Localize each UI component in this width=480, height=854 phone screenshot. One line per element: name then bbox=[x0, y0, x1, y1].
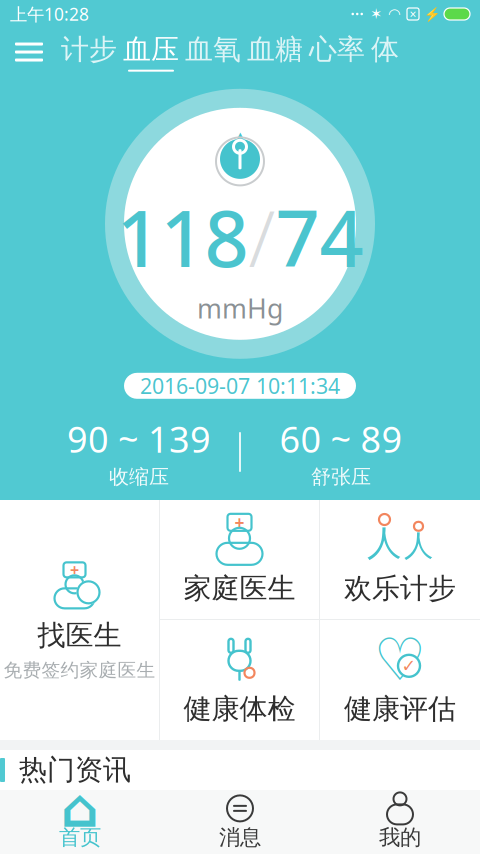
button[interactable]: 我的 bbox=[320, 790, 480, 854]
staticText: 人 bbox=[367, 522, 402, 565]
button[interactable]: + bbox=[160, 500, 319, 619]
button[interactable]: 血压 bbox=[120, 28, 182, 76]
staticText: 健康评估 bbox=[344, 692, 456, 726]
staticText: 上午10:28 bbox=[10, 2, 89, 25]
staticText: ◠ bbox=[388, 6, 401, 22]
staticText: 计步 bbox=[61, 32, 117, 67]
button[interactable]: 消息 bbox=[160, 790, 320, 854]
staticText: 体 bbox=[371, 32, 399, 67]
staticText: ✶ bbox=[370, 6, 382, 22]
button[interactable]: 菜单 bbox=[0, 28, 58, 76]
staticText: 欢乐计步 bbox=[344, 571, 456, 606]
staticText: ▲ bbox=[229, 120, 250, 150]
staticText: 心率 bbox=[309, 32, 365, 67]
staticText: 90 ~ 139 bbox=[67, 415, 211, 463]
staticText: ⌂ bbox=[61, 778, 99, 839]
staticText: 血氧 bbox=[185, 32, 241, 67]
staticText: 健康体检 bbox=[183, 692, 295, 726]
staticText: 收缩压 bbox=[109, 465, 169, 489]
staticText: 118 bbox=[116, 186, 248, 288]
staticText: + bbox=[234, 511, 244, 534]
staticText: × bbox=[409, 6, 416, 22]
staticText: 免费签约家庭医生 bbox=[3, 659, 155, 682]
button[interactable]: 2016-09-07 10:11:34 bbox=[124, 373, 356, 399]
staticText: 人 bbox=[404, 528, 433, 564]
staticText: 家庭医生 bbox=[183, 571, 295, 606]
staticText: 首页 bbox=[59, 824, 101, 851]
staticText: ▲ bbox=[232, 127, 248, 151]
staticText: 血压 bbox=[123, 32, 179, 67]
staticText: 血糖 bbox=[247, 32, 303, 67]
staticText: 舒张压 bbox=[311, 465, 371, 489]
button[interactable]: + bbox=[0, 500, 159, 740]
staticText: 74 bbox=[275, 186, 363, 288]
button[interactable]: ♡ bbox=[320, 620, 480, 740]
button[interactable]: 心率 bbox=[306, 28, 368, 76]
staticText: 我的 bbox=[379, 824, 421, 851]
button[interactable]: 计步 bbox=[58, 28, 120, 76]
button[interactable]: ⌂ bbox=[0, 790, 160, 854]
staticText: 60 ~ 89 bbox=[279, 415, 402, 463]
button[interactable]: 体 bbox=[368, 28, 402, 76]
staticText: ⚡ bbox=[424, 6, 441, 22]
staticText: ✓ bbox=[401, 656, 416, 676]
staticText: 找医生 bbox=[37, 618, 121, 653]
staticText: 2016-09-07 10:11:34 bbox=[140, 372, 340, 400]
staticText: / bbox=[248, 186, 275, 288]
staticText: 热门资讯 bbox=[19, 753, 131, 787]
button[interactable]: 血氧 bbox=[182, 28, 244, 76]
button[interactable]: 血糖 bbox=[244, 28, 306, 76]
button[interactable]: 健康体检 bbox=[160, 620, 319, 740]
staticText: mmHg bbox=[197, 290, 283, 326]
staticText: ♡ bbox=[373, 626, 426, 693]
staticText: 消息 bbox=[219, 824, 261, 851]
button[interactable]: 人 bbox=[320, 500, 480, 619]
staticText: + bbox=[70, 559, 79, 580]
